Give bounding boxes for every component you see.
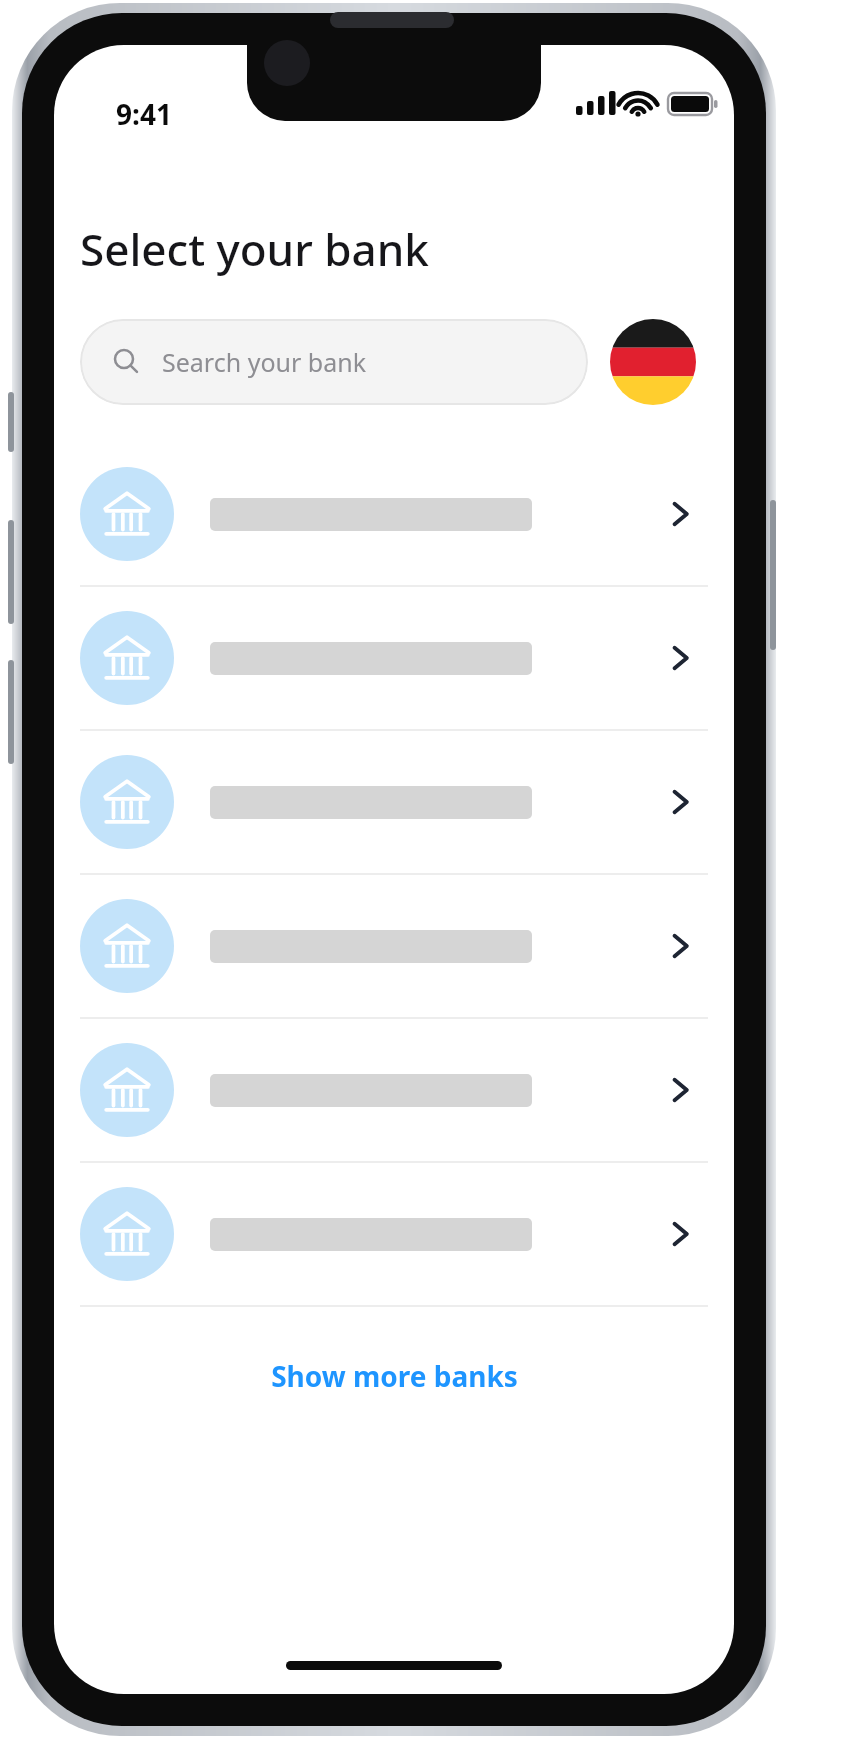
- button[interactable]: [54, 1019, 734, 1161]
- button[interactable]: [54, 731, 734, 873]
- button[interactable]: Search your bank: [80, 319, 588, 405]
- button[interactable]: [54, 1163, 734, 1305]
- staticText: Search your bank: [162, 345, 366, 379]
- staticText: 9:41: [116, 95, 172, 133]
- button[interactable]: [54, 443, 734, 585]
- button[interactable]: [54, 587, 734, 729]
- staticText: Show more banks: [271, 1357, 518, 1395]
- button[interactable]: [54, 875, 734, 1017]
- button[interactable]: Show more banks: [54, 1343, 734, 1409]
- button[interactable]: Select country: Germany: [610, 319, 696, 405]
- staticText: Select your bank: [80, 219, 429, 279]
